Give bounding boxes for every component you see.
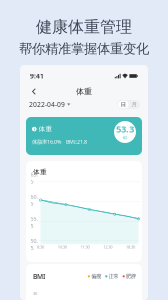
staticText: 体脂率16.0%: [32, 138, 61, 145]
staticText: 体重: [76, 87, 92, 96]
staticText: 体重: [33, 168, 47, 176]
staticText: 2022-04-09: [29, 100, 65, 109]
staticText: BMI:21.8: [66, 138, 87, 145]
staticText: BMI: [33, 272, 45, 281]
staticText: 50.5: [30, 237, 37, 252]
staticText: KG: [122, 135, 127, 140]
staticText: 月: [131, 101, 136, 108]
staticText: 65.5: [30, 171, 37, 185]
staticText: 10:30: [58, 244, 67, 249]
staticText: 30: [33, 291, 37, 296]
staticText: 12:30: [103, 244, 112, 249]
button[interactable]: 日: [118, 101, 129, 108]
staticText: 偏瘦: [91, 273, 101, 280]
staticText: 帮你精准掌握体重变化: [19, 41, 149, 57]
button[interactable]: 2022-04-09: [29, 100, 70, 109]
staticText: 18:30: [126, 244, 135, 249]
button[interactable]: Back: [28, 86, 40, 96]
staticText: 8:30: [37, 244, 44, 249]
staticText: 日: [121, 101, 126, 108]
staticText: 60.5: [30, 193, 37, 207]
staticText: 53.3: [116, 123, 134, 135]
staticText: 9:41: [30, 72, 44, 80]
staticText: 11:30: [80, 244, 89, 249]
staticText: 正常: [109, 273, 119, 280]
staticText: 健康体重管理: [36, 17, 132, 37]
staticText: 肥胖: [126, 273, 136, 280]
staticText: 55.5: [30, 215, 37, 229]
staticText: 体重: [39, 125, 53, 133]
button[interactable]: 月: [129, 101, 139, 108]
